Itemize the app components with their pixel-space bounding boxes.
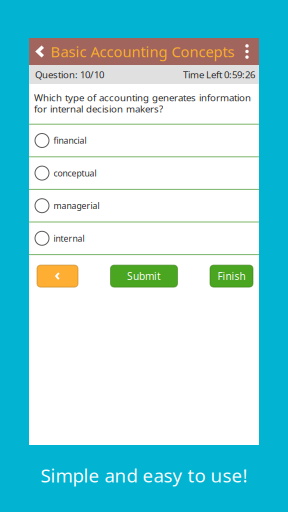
staticText: Simple and easy to use!	[40, 463, 247, 488]
button[interactable]: managerial	[29, 190, 259, 222]
button[interactable]: Finish	[210, 265, 253, 287]
button[interactable]: Previous question	[37, 265, 78, 287]
button[interactable]: Back	[29, 38, 50, 65]
button[interactable]: conceptual	[29, 157, 259, 190]
staticText: financial	[53, 135, 86, 146]
staticText: Submit	[127, 269, 161, 283]
button[interactable]: financial	[29, 125, 259, 157]
button[interactable]: Submit	[110, 265, 177, 287]
staticText: conceptual	[53, 167, 96, 179]
staticText: managerial	[53, 200, 99, 212]
button[interactable]: internal	[29, 222, 259, 255]
staticText: internal	[53, 232, 84, 244]
staticText: Basic Accounting Concepts	[50, 41, 234, 61]
staticText: Which type of accounting generates infor…	[34, 91, 251, 104]
staticText: for internal decision makers?	[34, 102, 163, 115]
button[interactable]: More options	[239, 38, 259, 65]
staticText: Question: 10/10	[35, 68, 104, 81]
staticText: Time Left 0:59:26	[183, 68, 255, 81]
staticText: Finish	[217, 269, 245, 283]
